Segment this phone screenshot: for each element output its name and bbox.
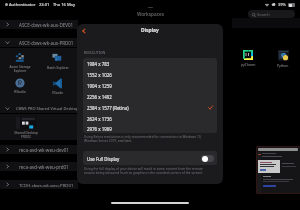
button[interactable]: Use Full Display <box>83 151 217 165</box>
staticText: 2976 x 1969 <box>87 126 112 132</box>
staticText: 39% <box>278 2 286 7</box>
button[interactable]: 1984 x 783 <box>83 58 217 69</box>
staticText: Using Retina resolutions is only recomme… <box>84 135 202 143</box>
staticText: ASCE-cbws-wk-aus-PRD01 <box>19 40 74 46</box>
button[interactable]: RStudio <box>2 78 37 94</box>
staticText: TCDH-cbws-wk-weu-PRD01 <box>19 182 74 188</box>
button[interactable]: Search <box>248 10 295 18</box>
staticText: RStudio <box>14 90 26 94</box>
button[interactable]: ASCE-cbws-wk-aus-PRD01 <box>0 38 78 47</box>
staticText: Shared Desktop PRD02 <box>14 131 38 139</box>
staticText: 2624 x 1736 <box>87 116 112 122</box>
button[interactable]: 1904 x 1259 <box>83 80 217 91</box>
staticText: CBWS PRO Shared Virtual Desktop <box>16 106 78 111</box>
staticText: 1984 x 783 <box>87 61 110 67</box>
staticText: Display <box>141 27 159 34</box>
button[interactable]: 2976 x 1969 <box>83 124 217 133</box>
staticText: 1904 x 1259 <box>87 83 112 89</box>
button[interactable]: ASCE-cbws-wk-aus-DEV01 <box>0 20 78 29</box>
staticText: VScode <box>52 91 63 95</box>
staticText: reca-avd-wk-weu-prd01 <box>19 164 69 170</box>
staticText: ASCE-cbws-wk-aus-DEV01 <box>19 22 74 28</box>
staticText: Thu 16 May <box>53 2 75 7</box>
button[interactable]: pyCharm <box>236 50 260 67</box>
button[interactable]: Shared Desktop PRD02 <box>10 117 42 139</box>
staticText: Batch Explorer <box>47 66 69 70</box>
staticText: Using the full display of your device wi… <box>84 167 204 175</box>
staticText: 2256 x 1492 <box>87 94 112 100</box>
staticText: Python <box>277 63 289 68</box>
staticText: 23:01 <box>39 2 50 7</box>
button[interactable]: VScode <box>40 78 75 95</box>
button[interactable]: 2384 x 1577 (Retina) <box>83 102 217 113</box>
staticText: pyCharm <box>241 62 256 67</box>
staticText: 1552 x 1026 <box>87 72 112 78</box>
staticText: Use Full Display <box>87 156 120 162</box>
button[interactable]: 1552 x 1026 <box>83 69 217 80</box>
button[interactable]: 2256 x 1492 <box>83 91 217 102</box>
button[interactable]: reca-avd-wk-weu-prd01 <box>0 162 78 171</box>
button[interactable]: Batch Explorer <box>40 53 75 70</box>
staticText: reca-avd-wk-weu-dev01 <box>19 147 69 153</box>
staticText: 2384 x 1577 (Retina) <box>87 105 129 111</box>
button[interactable]: Python <box>271 50 295 68</box>
button[interactable]: CBWS PRO Shared Virtual Desktop <box>0 104 78 113</box>
staticText: Search <box>257 12 270 17</box>
button[interactable]: reca-avd-wk-weu-dev01 <box>0 145 78 154</box>
staticText: Azure Storage Explorer <box>9 65 31 73</box>
button[interactable]: 2624 x 1736 <box>83 113 217 124</box>
button[interactable]: Back <box>77 24 91 37</box>
staticText: RESOLUTION <box>84 50 106 55</box>
button[interactable]: TCDH-cbws-wk-weu-PRD01 <box>0 180 78 189</box>
staticText: Workspaces <box>137 11 164 17</box>
button[interactable]: Azure Storage Explorer <box>2 53 37 73</box>
staticText: Authenticator <box>9 2 36 7</box>
